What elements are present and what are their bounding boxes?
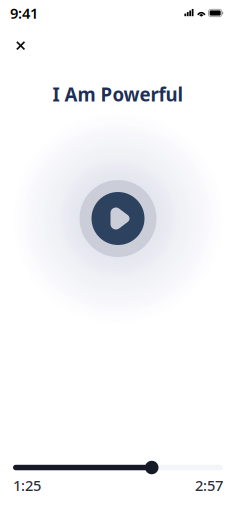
staticText: 1:25 [13,475,41,495]
staticText: 2:57 [195,475,223,495]
button[interactable]: Play [79,180,156,257]
button[interactable]: Close [7,32,34,59]
staticText: I Am Powerful [52,82,183,107]
staticText: 9:41 [10,3,38,23]
